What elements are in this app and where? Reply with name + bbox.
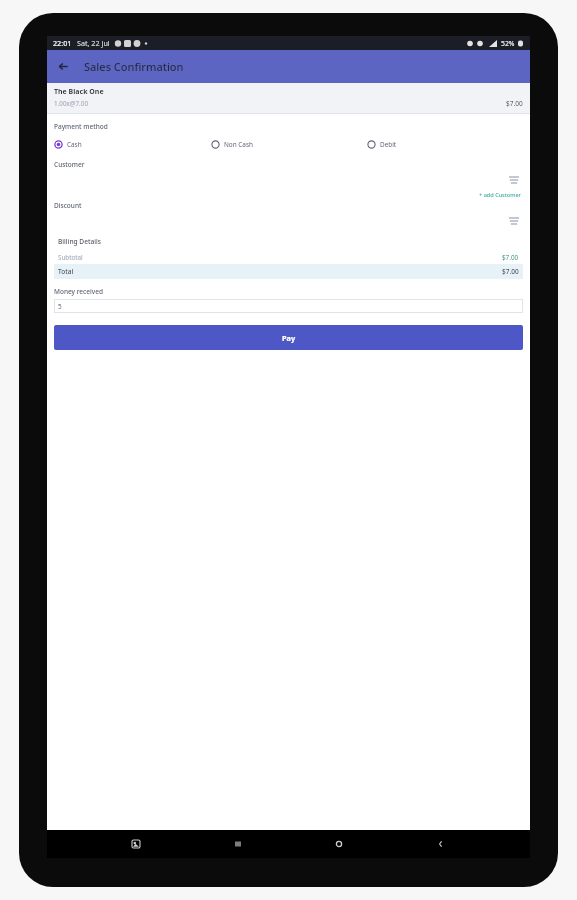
button[interactable]: Keyboard	[123, 831, 149, 857]
button[interactable]: Non Cash	[211, 140, 367, 149]
staticText: Total	[58, 267, 74, 276]
button[interactable]: Select customer	[505, 171, 523, 189]
staticText: 52%	[501, 39, 515, 48]
staticText: $7.00	[502, 267, 519, 276]
staticText: Sales Confirmation	[84, 59, 184, 74]
staticText: Billing Details	[58, 237, 102, 246]
button[interactable]: Back	[428, 831, 454, 857]
button[interactable]: Back	[47, 50, 80, 83]
staticText: Sat, 22 Jul	[77, 38, 110, 48]
staticText: Debit	[380, 140, 397, 149]
staticText: Cash	[67, 140, 82, 149]
staticText: Non Cash	[224, 140, 253, 149]
button[interactable]: Select discount	[505, 212, 523, 230]
staticText: $7.00	[506, 99, 523, 108]
staticText: Subtotal	[58, 253, 83, 262]
button[interactable]: Select discount	[54, 210, 523, 232]
staticText: 22:01	[53, 38, 72, 48]
button[interactable]: Home	[326, 831, 352, 857]
button[interactable]: Cash	[54, 140, 211, 149]
staticText: 5	[58, 302, 62, 311]
staticText: Payment method	[54, 122, 108, 131]
staticText: $7.00	[502, 253, 519, 262]
staticText: The Black One	[54, 87, 104, 97]
staticText: 1.00x@7.00	[54, 99, 88, 108]
staticText: Pay	[282, 333, 296, 343]
staticText: + add Customer	[479, 191, 521, 199]
staticText: Money received	[54, 287, 103, 296]
staticText: Discount	[54, 201, 82, 210]
button[interactable]: Pay	[54, 325, 523, 350]
button[interactable]: Select customer	[54, 169, 523, 191]
button[interactable]: + add Customer	[478, 191, 522, 199]
button[interactable]: Recent apps	[225, 831, 251, 857]
button[interactable]: Debit	[367, 140, 523, 149]
button[interactable]: The Black One	[47, 83, 530, 113]
staticText: Customer	[54, 160, 85, 169]
button[interactable]: 5	[54, 299, 523, 313]
